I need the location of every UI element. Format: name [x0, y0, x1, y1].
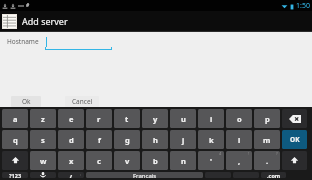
- button[interactable]: i: [198, 109, 224, 128]
- button[interactable]: q: [2, 130, 28, 149]
- staticText: b: [153, 156, 158, 166]
- staticText: !: [248, 151, 250, 156]
- staticText: r: [97, 114, 101, 124]
- button[interactable]: b: [142, 151, 168, 170]
- staticText: j: [182, 135, 185, 145]
- button[interactable]: e: [58, 109, 84, 128]
- staticText: Cancel: [72, 97, 93, 106]
- button[interactable]: ?: [254, 151, 280, 170]
- staticText: n: [181, 156, 186, 166]
- button[interactable]: a: [2, 109, 28, 128]
- button[interactable]: Cancel: [65, 96, 99, 107]
- button[interactable]: 4: [198, 151, 224, 170]
- staticText: Add server: [22, 15, 68, 27]
- button[interactable]: t: [114, 109, 140, 128]
- staticText: c: [97, 156, 101, 166]
- staticText: t: [125, 114, 129, 124]
- staticText: i: [210, 114, 213, 124]
- button[interactable]: y: [142, 109, 168, 128]
- staticText: ?: [276, 151, 278, 156]
- staticText: a: [13, 114, 18, 124]
- button[interactable]: Shift: [2, 151, 28, 170]
- button[interactable]: v: [114, 151, 140, 170]
- button[interactable]: n: [170, 151, 196, 170]
- staticText: .: [266, 156, 269, 166]
- staticText: h: [153, 135, 158, 145]
- staticText: ?123: [9, 172, 22, 178]
- button[interactable]: c: [86, 151, 112, 170]
- button[interactable]: x: [58, 151, 84, 170]
- staticText: u: [181, 114, 186, 124]
- button[interactable]: App icon: [0, 11, 312, 31]
- staticText: 4: [219, 151, 222, 156]
- button[interactable]: Français: [86, 172, 203, 178]
- other: App icon: [2, 14, 17, 29]
- staticText: k: [209, 135, 214, 145]
- staticText: d: [69, 135, 74, 145]
- staticText: v: [125, 156, 130, 166]
- staticText: 1:50: [296, 1, 310, 11]
- button[interactable]: r: [86, 109, 112, 128]
- button[interactable]: z: [30, 109, 56, 128]
- button[interactable]: Voice input: [30, 172, 56, 178]
- staticText: ,: [238, 156, 241, 166]
- staticText: z: [41, 114, 45, 124]
- staticText: p: [265, 114, 270, 124]
- button[interactable]: :: [58, 172, 84, 178]
- button[interactable]: o: [226, 109, 252, 128]
- staticText: l: [238, 135, 241, 145]
- staticText: o: [237, 114, 242, 124]
- staticText: f: [98, 135, 101, 145]
- button[interactable]: f: [86, 130, 112, 149]
- button[interactable]: m: [254, 130, 280, 149]
- button[interactable]: Shift: [282, 151, 307, 170]
- staticText: Hostname: [7, 37, 39, 46]
- staticText: OK: [290, 135, 300, 144]
- button[interactable]: [45, 37, 112, 50]
- button[interactable]: k: [198, 130, 224, 149]
- button[interactable]: l: [226, 130, 252, 149]
- staticText: Ok: [22, 97, 31, 106]
- staticText: m: [263, 135, 271, 145]
- staticText: s: [41, 135, 45, 145]
- staticText: q: [13, 135, 18, 145]
- staticText: Français: [133, 172, 157, 178]
- staticText: #: [26, 2, 30, 9]
- button[interactable]: p: [254, 109, 280, 128]
- button[interactable]: ?123: [2, 172, 28, 178]
- button[interactable]: h: [142, 130, 168, 149]
- staticText: w: [40, 156, 47, 166]
- button[interactable]: OK: [282, 130, 307, 149]
- button[interactable]: j: [170, 130, 196, 149]
- button[interactable]: .com: [261, 172, 286, 178]
- button[interactable]: s: [30, 130, 56, 149]
- button[interactable]: Backspace: [282, 109, 307, 128]
- button[interactable]: Ok: [11, 96, 41, 107]
- staticText: :: [80, 172, 82, 177]
- staticText: x: [69, 156, 74, 166]
- staticText: ': [210, 156, 212, 166]
- staticText: y: [153, 114, 158, 124]
- staticText: g: [125, 135, 130, 145]
- button[interactable]: !: [226, 151, 252, 170]
- staticText: /: [69, 172, 73, 178]
- button[interactable]: u: [170, 109, 196, 128]
- staticText: e: [69, 114, 74, 124]
- button[interactable]: g: [114, 130, 140, 149]
- button[interactable]: d: [58, 130, 84, 149]
- button[interactable]: w: [30, 151, 56, 170]
- staticText: .com: [267, 172, 281, 178]
